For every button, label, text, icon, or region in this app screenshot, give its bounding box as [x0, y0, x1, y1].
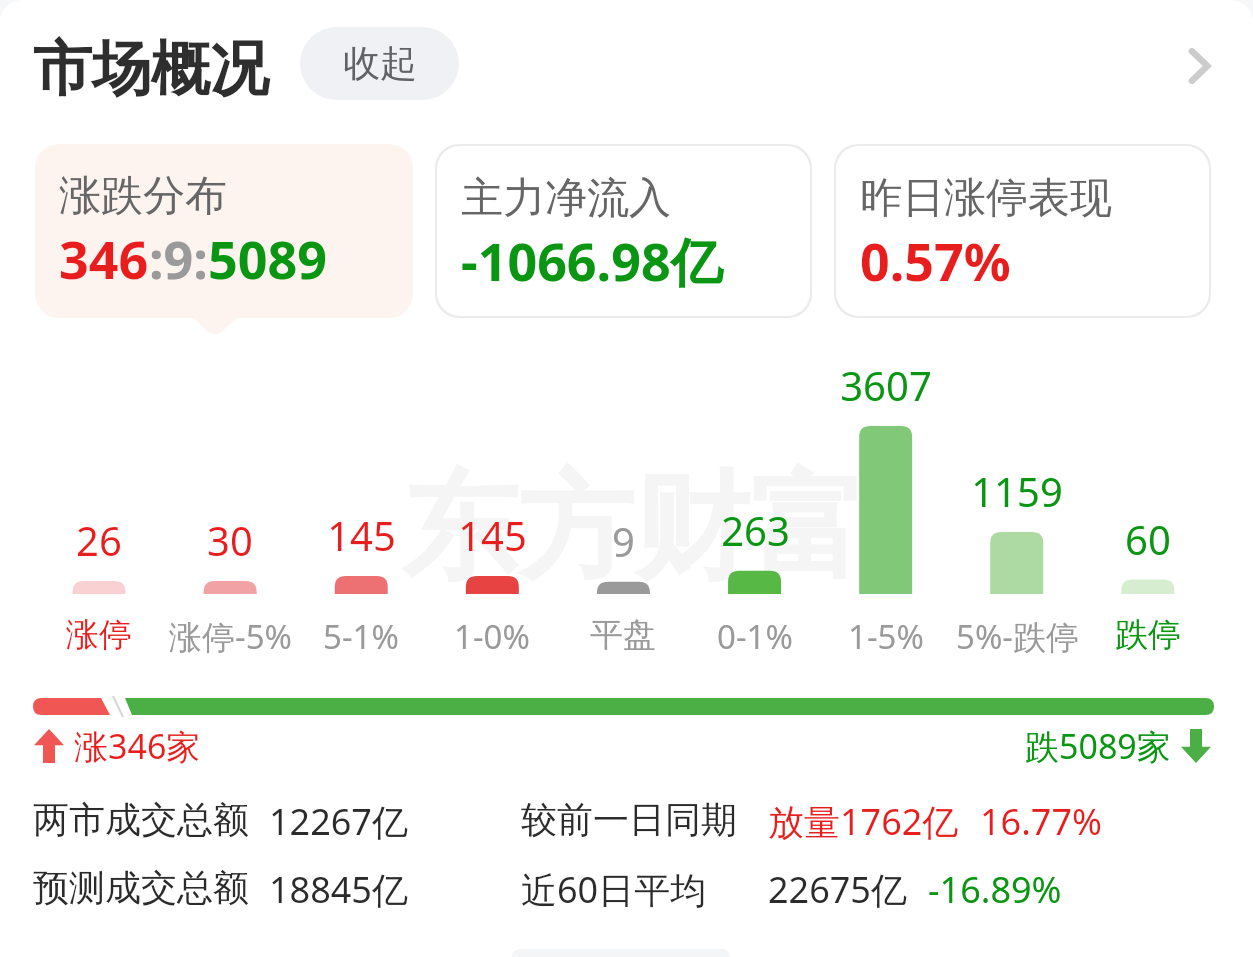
- staticText: 涨停-5%: [169, 614, 292, 659]
- staticText: 145: [327, 508, 396, 562]
- button[interactable]: 主力净流入: [437, 146, 810, 316]
- staticText: 3607: [840, 358, 932, 412]
- staticText: 涨停: [66, 614, 132, 656]
- staticText: 9: [612, 514, 635, 568]
- staticText: 涨跌分布: [59, 170, 227, 223]
- staticText: 346: [59, 223, 149, 294]
- staticText: 5089: [208, 223, 327, 294]
- staticText: -16.89%: [928, 865, 1062, 914]
- button[interactable]: 昨日涨停表现: [836, 146, 1209, 316]
- staticText: 263: [721, 503, 790, 557]
- staticText: 30: [207, 513, 253, 567]
- staticText: 1-5%: [848, 614, 924, 659]
- staticText: 18845亿: [269, 865, 408, 914]
- staticText: 两市成交总额: [33, 797, 249, 842]
- staticText: 60: [1125, 512, 1171, 566]
- staticText: 平盘: [590, 614, 656, 656]
- staticText: 0.57%: [860, 225, 1011, 296]
- staticText: 放量1762亿: [768, 797, 959, 846]
- staticText: -1066.98亿: [461, 225, 723, 296]
- staticText: 预测成交总额: [33, 865, 249, 910]
- staticText: 145: [458, 508, 527, 562]
- staticText: 16.77%: [980, 797, 1102, 846]
- staticText: 近60日平均: [521, 865, 707, 914]
- staticText: 26: [76, 513, 122, 567]
- staticText: 跌停: [1115, 614, 1181, 656]
- button[interactable]: 收起: [300, 27, 459, 100]
- button[interactable]: 涨跌分布: [35, 144, 413, 318]
- staticText: 东方财富: [402, 455, 866, 601]
- staticText: 跌5089家: [1025, 723, 1171, 769]
- staticText: 较前一日同期: [521, 797, 737, 842]
- staticText: 主力净流入: [461, 172, 671, 225]
- staticText: 5%-跌停: [956, 614, 1079, 659]
- staticText: 收起: [343, 40, 417, 87]
- staticText: 1-0%: [454, 614, 530, 659]
- staticText: 5-1%: [323, 614, 399, 659]
- staticText: 市场概况: [33, 32, 269, 106]
- other: 上涨: [34, 729, 64, 763]
- staticText: 22675亿: [768, 865, 907, 914]
- button[interactable]: 查看更多: [1172, 38, 1228, 94]
- staticText: :9:: [149, 223, 208, 294]
- staticText: 12267亿: [269, 797, 408, 846]
- other: 下跌: [1181, 729, 1211, 763]
- staticText: 涨346家: [74, 723, 201, 769]
- staticText: 0-1%: [717, 614, 793, 659]
- staticText: 昨日涨停表现: [860, 172, 1112, 225]
- staticText: 1159: [971, 464, 1063, 518]
